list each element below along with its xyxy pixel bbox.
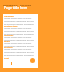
- staticText: More: [4, 40, 10, 43]
- staticText: Lorem ipsum dolor sit amet consectetur a…: [4, 27, 35, 36]
- staticText: Lorem ipsum dolor sit amet consectetur a…: [4, 17, 35, 26]
- staticText: Last: [4, 57, 9, 60]
- staticText: Section two: [4, 25, 18, 28]
- button[interactable]: Add note: [30, 58, 35, 63]
- staticText: Another: [4, 34, 14, 37]
- staticText: Heading: [4, 15, 14, 18]
- staticText: Section: [4, 46, 13, 49]
- staticText: Lorem ipsum dolor sit amet consectetur a…: [4, 42, 35, 48]
- staticText: Lorem ipsum dolor sit amet consectetur a…: [4, 48, 35, 57]
- staticText: NOTEBOOK SECTION: [3, 3, 32, 6]
- staticText: Lorem ipsum dolor sit amet consectetur a…: [4, 36, 35, 42]
- staticText: Page title here: [4, 6, 28, 10]
